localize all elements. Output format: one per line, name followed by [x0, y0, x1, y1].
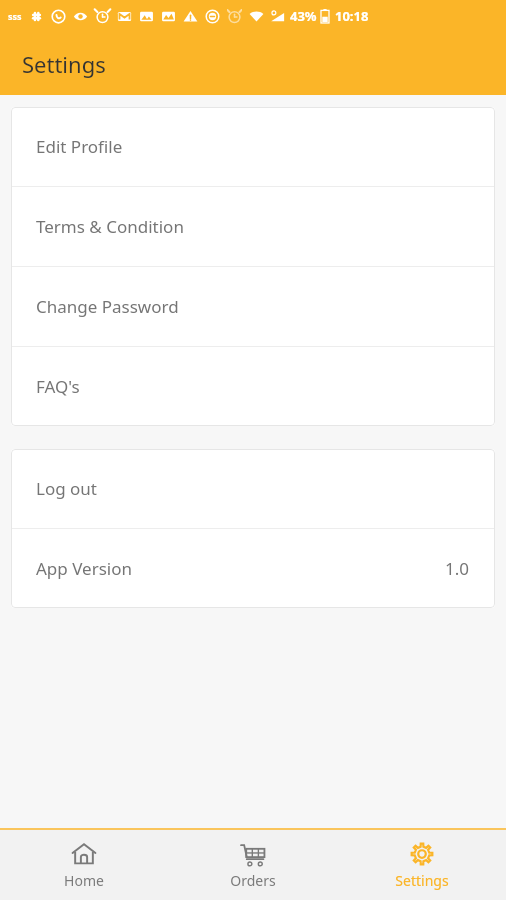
- button[interactable]: FAQ's: [11, 347, 495, 426]
- staticText: sss: [8, 10, 22, 22]
- button[interactable]: Edit Profile: [11, 107, 495, 186]
- staticText: 43%: [290, 7, 317, 25]
- staticText: Settings: [395, 871, 449, 890]
- staticText: 10:18: [335, 7, 369, 25]
- staticText: 1.0: [445, 557, 470, 580]
- staticText: Edit Profile: [36, 135, 123, 158]
- staticText: Home: [64, 871, 104, 890]
- staticText: Log out: [36, 477, 97, 500]
- staticText: App Version: [36, 557, 132, 580]
- button[interactable]: App Version: [11, 529, 495, 608]
- staticText: Change Password: [36, 295, 179, 318]
- staticText: FAQ's: [36, 375, 80, 398]
- button[interactable]: Home: [0, 830, 168, 900]
- staticText: Settings: [22, 49, 106, 79]
- button[interactable]: Change Password: [11, 267, 495, 346]
- button[interactable]: Orders: [168, 830, 337, 900]
- button[interactable]: Settings: [337, 830, 506, 900]
- button[interactable]: Log out: [11, 449, 495, 528]
- staticText: Terms & Condition: [36, 215, 184, 238]
- staticText: Orders: [230, 871, 276, 890]
- button[interactable]: Terms & Condition: [11, 187, 495, 266]
